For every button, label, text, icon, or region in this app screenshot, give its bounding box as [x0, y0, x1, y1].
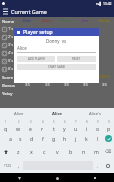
button[interactable]: 6's — [0, 65, 114, 73]
button[interactable]: a — [5, 132, 15, 145]
staticText: j — [75, 135, 77, 142]
button[interactable]: Home — [53, 174, 61, 182]
staticText: 2 — [18, 120, 20, 124]
staticText: ⌫ — [105, 149, 112, 154]
staticText: 1's — [8, 26, 14, 32]
button[interactable]: 8 — [81, 119, 92, 132]
staticText: y — [63, 125, 66, 132]
staticText: 1 — [5, 120, 7, 124]
button[interactable]: h — [59, 132, 70, 145]
button[interactable]: b — [64, 145, 77, 158]
staticText: Bob — [23, 18, 31, 24]
button[interactable]: Yatzy — [0, 89, 114, 97]
button[interactable]: g — [48, 132, 59, 145]
staticText: o — [96, 125, 100, 132]
button[interactable]: Emoji — [102, 158, 114, 173]
button[interactable]: 1's — [0, 25, 114, 33]
staticText: 8 — [86, 120, 88, 124]
button[interactable]: Comma — [14, 158, 23, 173]
button[interactable]: Alice — [38, 108, 76, 119]
button[interactable]: START GAME — [17, 64, 96, 70]
button[interactable]: Menu — [0, 6, 11, 17]
staticText: RESET — [72, 57, 81, 61]
button[interactable]: Bonus — [0, 81, 114, 89]
button[interactable]: Alive — [0, 108, 38, 119]
button[interactable]: j — [70, 132, 81, 145]
staticText: Alice — [42, 18, 52, 24]
staticText: ▾▴▌ 13:42 — [96, 1, 112, 6]
staticText: 4's — [8, 50, 14, 56]
button[interactable]: 6 — [59, 119, 70, 132]
staticText: Name — [2, 18, 15, 24]
button[interactable]: Shift — [0, 145, 11, 158]
button[interactable]: 2 — [12, 119, 24, 132]
staticText: 5's — [8, 58, 14, 64]
staticText: 35 — [45, 82, 50, 88]
staticText: b — [69, 148, 73, 155]
staticText: Alive — [14, 111, 24, 117]
staticText: v — [56, 148, 59, 155]
staticText: START GAME — [48, 65, 66, 69]
button[interactable]: 4 — [36, 119, 48, 132]
staticText: a — [9, 135, 12, 142]
staticText: ADD PLAYER — [28, 57, 45, 61]
button[interactable]: Back — [15, 174, 23, 182]
button[interactable]: 0 — [103, 119, 114, 132]
button[interactable]: Name — [0, 17, 114, 25]
button[interactable]: 5's — [0, 57, 114, 65]
staticText: u — [74, 125, 78, 132]
staticText: h — [63, 135, 67, 142]
button[interactable]: 1 — [0, 119, 12, 132]
staticText: Donny vs — [46, 38, 67, 44]
staticText: Current Game — [11, 8, 47, 15]
staticText: 5 — [53, 120, 55, 124]
button[interactable]: 2's — [0, 33, 114, 41]
button[interactable]: Period — [93, 158, 102, 173]
staticText: e — [29, 125, 32, 132]
staticText: f — [42, 135, 44, 142]
button[interactable]: k — [81, 132, 92, 145]
staticText: i — [86, 125, 88, 132]
staticText: m — [94, 148, 99, 155]
button[interactable]: m — [90, 145, 103, 158]
button[interactable]: Backspace — [103, 145, 114, 158]
button[interactable]: s — [15, 132, 26, 145]
button[interactable]: c — [38, 145, 51, 158]
button[interactable]: v — [51, 145, 64, 158]
staticText: 35 — [64, 82, 69, 88]
staticText: , — [18, 163, 20, 169]
staticText: q — [4, 125, 8, 132]
button[interactable]: z — [11, 145, 25, 158]
staticText: x — [30, 148, 33, 155]
button[interactable]: n — [77, 145, 90, 158]
staticText: 9 — [97, 120, 99, 124]
button[interactable]: x — [25, 145, 38, 158]
button[interactable]: Alice's — [76, 108, 114, 119]
button[interactable]: 3 — [24, 119, 36, 132]
button[interactable]: 4's — [0, 49, 114, 57]
button[interactable]: 9 — [92, 119, 103, 132]
button[interactable]: Enter — [105, 135, 112, 142]
staticText: 6's — [8, 66, 14, 72]
button[interactable]: ADD PLAYER — [17, 56, 55, 62]
staticText: Yatzy — [2, 90, 13, 96]
button[interactable]: 5 — [48, 119, 59, 132]
staticText: r — [41, 125, 44, 132]
button[interactable]: 7 — [70, 119, 81, 132]
button[interactable]: ?123 — [0, 158, 14, 173]
button[interactable]: Score — [0, 73, 114, 81]
button[interactable]: l — [92, 132, 103, 145]
button[interactable]: Recents — [91, 174, 99, 182]
staticText: k — [85, 135, 88, 142]
staticText: z — [17, 148, 20, 155]
button[interactable]: f — [37, 132, 48, 145]
staticText: 7 — [75, 120, 77, 124]
staticText: s — [19, 135, 22, 142]
button[interactable]: RESET — [57, 56, 96, 62]
button[interactable]: d — [26, 132, 37, 145]
button[interactable]: 3's — [0, 41, 114, 49]
staticText: p — [107, 125, 111, 132]
